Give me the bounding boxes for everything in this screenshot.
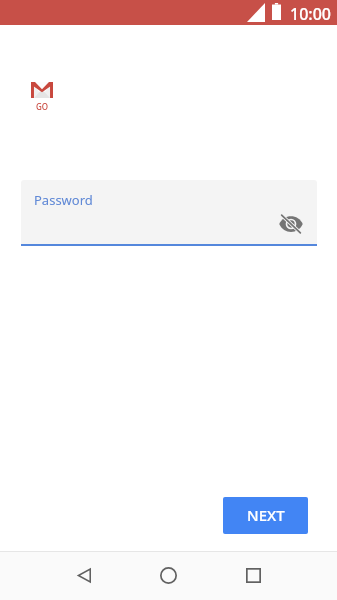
button[interactable]: Home — [144, 551, 192, 599]
button[interactable]: Recent apps — [229, 551, 277, 599]
button[interactable]: Toggle password visibility — [274, 207, 307, 240]
button[interactable]: Password — [21, 180, 317, 246]
staticText: Password — [34, 191, 93, 209]
button[interactable]: NEXT — [223, 497, 308, 534]
button[interactable]: Back — [60, 551, 108, 599]
staticText: GO — [36, 101, 49, 112]
staticText: NEXT — [247, 505, 285, 525]
staticText: 10:00 — [290, 3, 331, 25]
